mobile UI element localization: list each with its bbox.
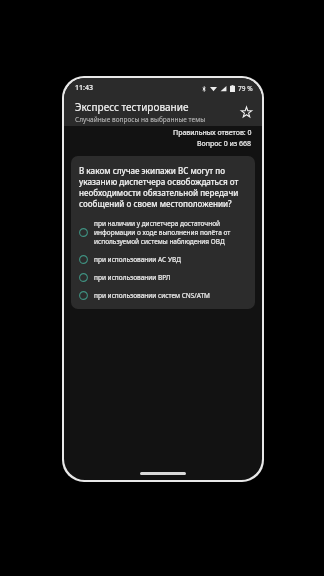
staticText: В каком случае экипажи ВС могут по указа… — [79, 165, 247, 209]
staticText: при использовании систем CNS/ATM — [94, 291, 210, 300]
button[interactable]: при использовании ВРЛ — [79, 273, 247, 282]
staticText: Вопрос 0 из 668 — [197, 139, 252, 149]
staticText: Случайные вопросы на выбранные темы — [75, 115, 206, 124]
button[interactable]: Favorite — [236, 102, 256, 122]
button[interactable]: при использовании АС УВД — [79, 255, 247, 264]
staticText: Экспресс тестирование — [75, 100, 189, 114]
button[interactable]: при использовании систем CNS/ATM — [79, 291, 247, 300]
staticText: 11:43 — [75, 83, 93, 93]
button[interactable]: при наличии у диспетчера достаточной инф… — [79, 219, 247, 246]
staticText: при использовании АС УВД — [94, 255, 181, 264]
staticText: Правильных ответов: 0 — [173, 128, 252, 138]
staticText: при наличии у диспетчера достаточной инф… — [94, 219, 247, 246]
staticText: 79 % — [238, 84, 253, 93]
staticText: при использовании ВРЛ — [94, 273, 171, 282]
